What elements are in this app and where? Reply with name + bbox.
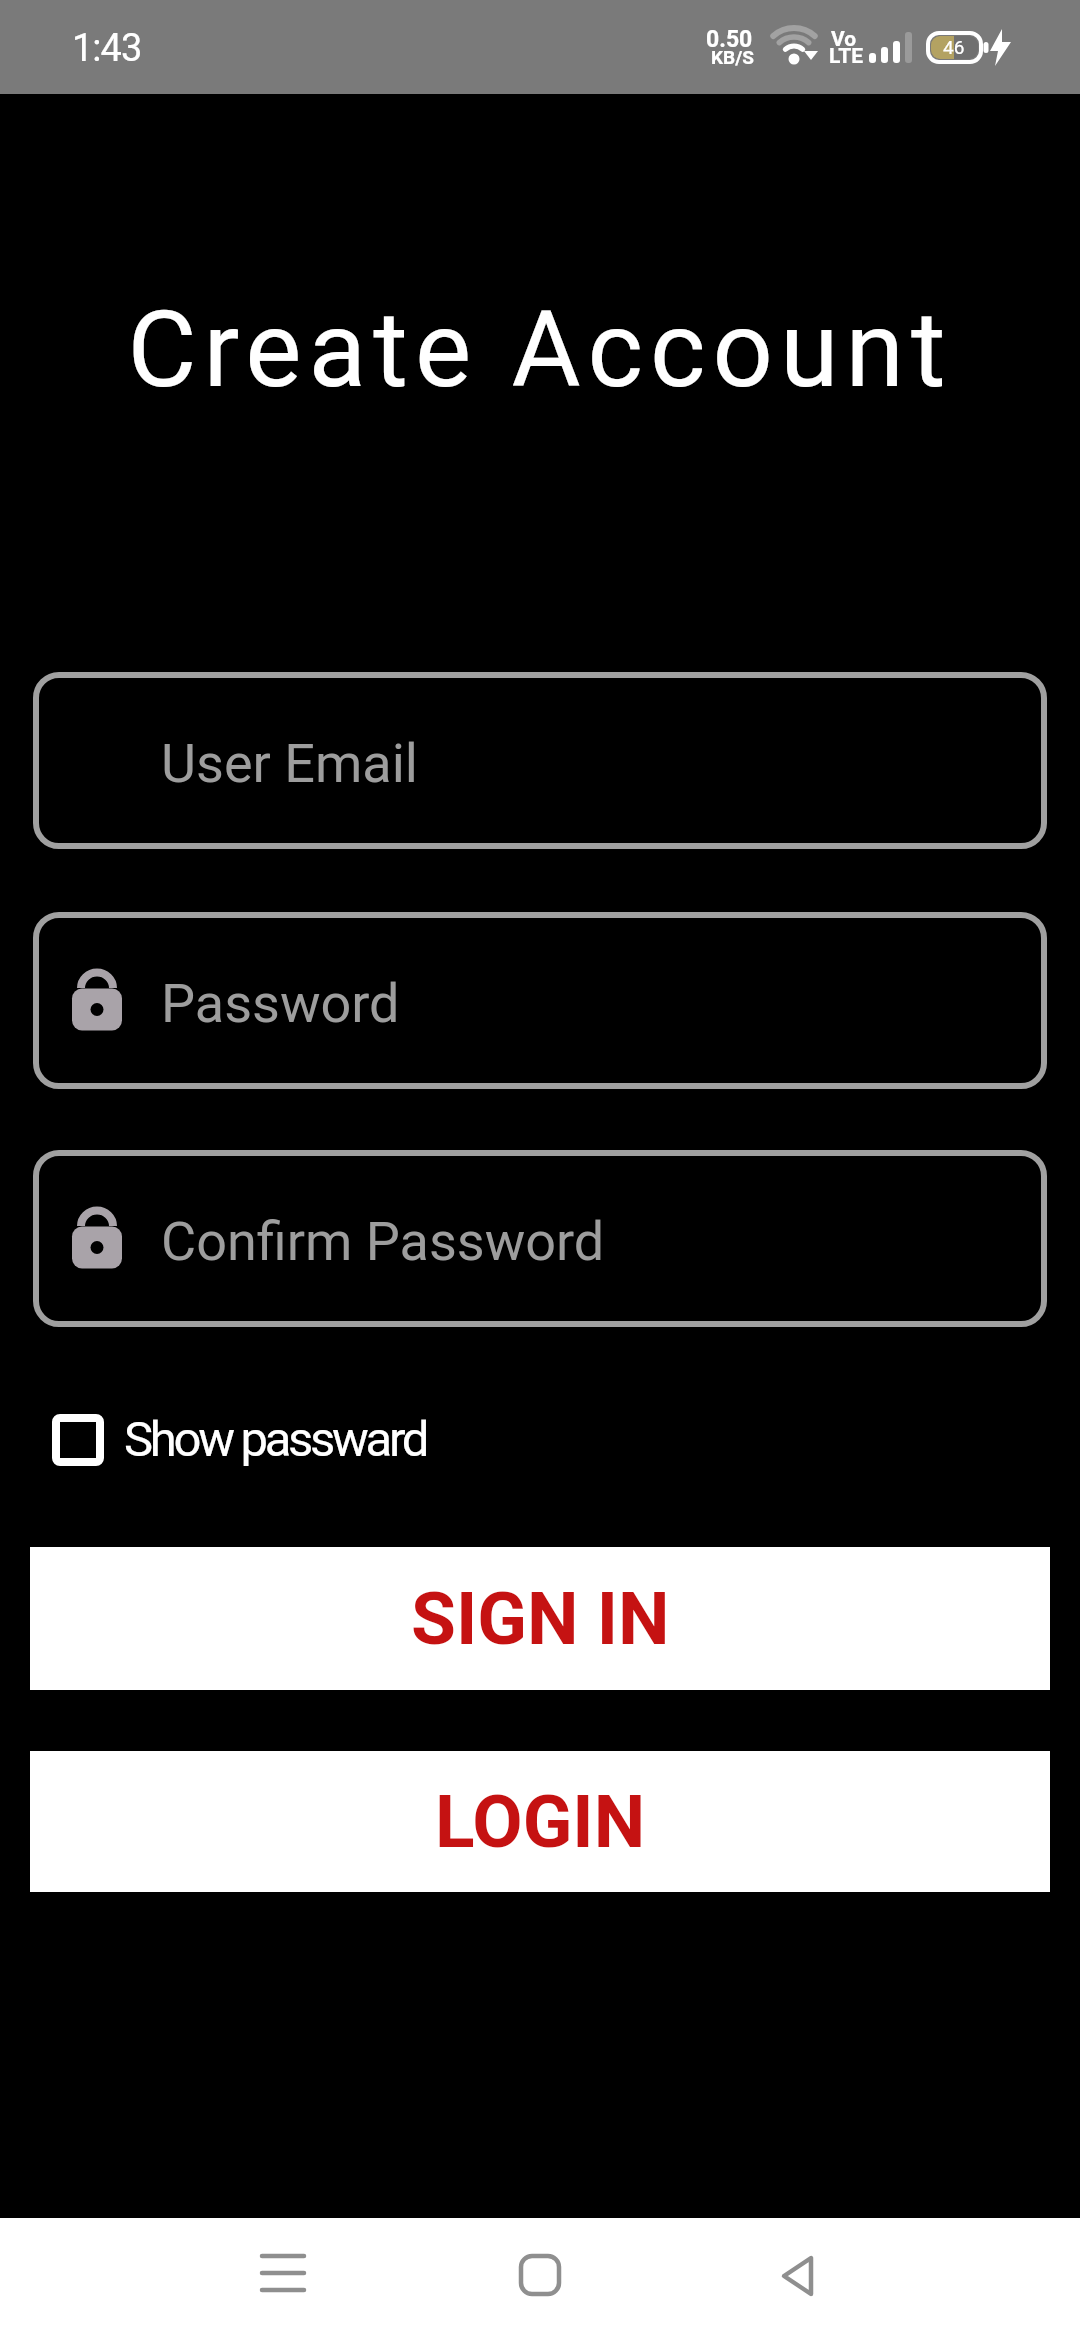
staticText: Create Account <box>0 288 1080 412</box>
button[interactable]: User Email <box>33 672 1047 849</box>
staticText: LOGIN <box>435 1779 646 1865</box>
staticText: Show passward <box>124 1411 427 1468</box>
staticText: SIGN IN <box>411 1576 670 1662</box>
button[interactable] <box>495 2235 585 2325</box>
staticText: 46 <box>943 36 965 58</box>
button[interactable]: Password <box>33 912 1047 1089</box>
button[interactable] <box>752 2235 842 2325</box>
staticText: User Email <box>161 732 418 795</box>
staticText: Password <box>161 972 400 1035</box>
staticText: 1:43 <box>72 26 142 71</box>
button[interactable]: Confirm Password <box>33 1150 1047 1327</box>
button[interactable]: LOGIN <box>30 1751 1050 1892</box>
button[interactable] <box>240 2235 330 2325</box>
staticText: Vo <box>831 27 857 52</box>
staticText: LTE <box>829 44 864 69</box>
staticText: Confirm Password <box>161 1210 605 1273</box>
staticText: KB/S <box>711 46 754 68</box>
button[interactable]: Show passward <box>52 1411 427 1468</box>
button[interactable]: SIGN IN <box>30 1547 1050 1690</box>
staticText: 0.50 <box>706 26 753 53</box>
